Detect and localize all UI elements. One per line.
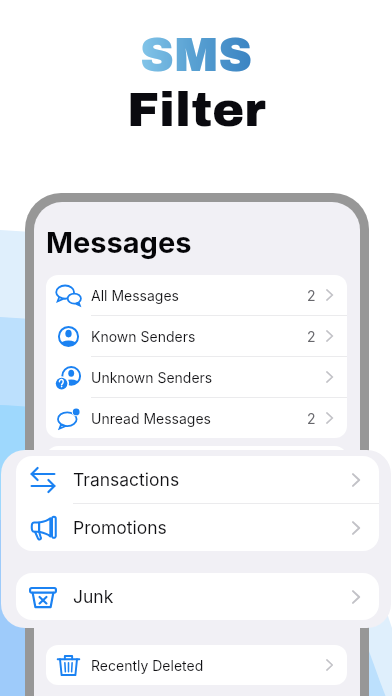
button[interactable]: Known Senders [46,316,347,356]
button[interactable]: Junk [16,573,379,620]
staticText: Transactions [91,458,176,475]
staticText: Recently Deleted [91,657,204,674]
staticText: Junk [73,586,114,607]
button[interactable]: Transactions [16,456,379,503]
staticText: Unknown Senders [91,369,213,386]
staticText: Known Senders [91,328,196,345]
staticText: 2 [307,410,316,427]
staticText: Promotions [91,499,167,516]
staticText: Junk [91,550,124,567]
staticText: Promotions [73,517,167,538]
button[interactable]: All Messages [46,275,347,315]
button[interactable]: Unknown Senders [46,357,347,397]
button[interactable]: Promotions [16,504,379,551]
staticText: 2 [307,287,316,304]
button[interactable]: Unread Messages [46,398,347,438]
staticText: 2 [307,328,316,345]
staticText: All Messages [91,287,179,304]
button[interactable]: Promotions [46,487,347,527]
staticText: Unread Messages [91,410,211,427]
staticText: Filter [127,84,266,136]
staticText: Messages [46,225,192,260]
button[interactable]: Transactions [46,446,347,486]
staticText: Transactions [73,469,180,490]
button[interactable]: Recently Deleted [46,645,347,685]
staticText: SMS [140,30,253,81]
button[interactable]: Junk [46,538,347,578]
